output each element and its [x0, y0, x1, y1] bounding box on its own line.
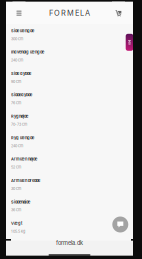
staticText: Ryg længde [11, 135, 34, 140]
staticText: Side længde [11, 28, 34, 33]
staticText: Ryghøjde [11, 114, 28, 119]
staticText: Indvendig længde [11, 50, 44, 54]
staticText: 300 cm [11, 36, 23, 41]
staticText: Armlæn højde [11, 157, 37, 161]
staticText: 240 cm [11, 143, 23, 148]
staticText: 30 cm [11, 186, 21, 191]
button[interactable]: Chat [112, 216, 128, 232]
staticText: Siddedybde [11, 92, 32, 97]
staticText: Siddehøjde [11, 199, 30, 204]
staticText: formela.dk [56, 239, 83, 246]
staticText: Side dybde [11, 71, 31, 76]
staticText: FORMELA [49, 9, 90, 18]
staticText: 240 cm [11, 58, 23, 62]
staticText: Armlæn bredde [11, 178, 40, 183]
button[interactable]: Help [126, 34, 133, 51]
staticText: 76 cm [11, 101, 21, 105]
staticText: 105.5 kg [11, 229, 25, 234]
staticText: Vægt [11, 221, 22, 226]
staticText: 70-73 cm [11, 122, 27, 127]
button[interactable]: Cart [112, 2, 125, 25]
staticText: 52 cm [11, 165, 21, 169]
button[interactable]: Menu [12, 2, 25, 25]
staticText: 90 cm [11, 79, 21, 84]
button[interactable]: formela.dk [56, 239, 83, 246]
staticText: 36 cm [11, 208, 21, 212]
